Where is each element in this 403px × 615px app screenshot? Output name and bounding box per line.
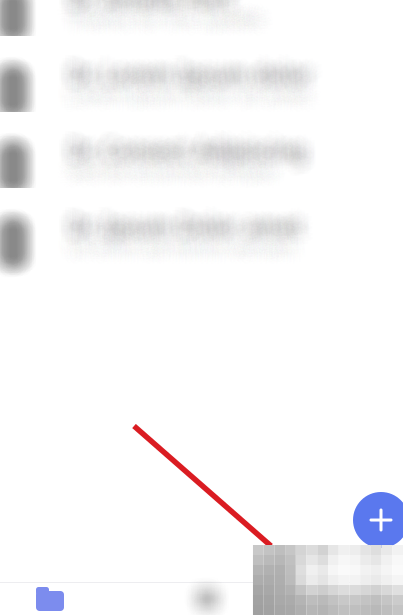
staticText: Dr. Amelia Hart (70, 0, 235, 2)
staticText: Dr. Lorem Ipsum dolor (75, 56, 319, 86)
button[interactable]: Dr. Consect Adipiscing (0, 112, 403, 188)
button[interactable]: Files (0, 583, 100, 615)
staticText: Dr. Amelia Hart (73, 0, 238, 17)
staticText: Dr. Lorem Ipsum dolor (63, 56, 307, 86)
staticText: Dr. Amelia Hart (63, 0, 228, 5)
staticText: Ut enim ad minim veniam (77, 239, 304, 264)
staticText: Lorem ipsum dolor sit amet (67, 82, 309, 107)
staticText: Lorem ipsum dolor sit amet (62, 88, 304, 112)
staticText: Lorem ipsum dolor sit amet (73, 85, 315, 110)
staticText: Dr. Consect Adipiscing (59, 139, 297, 170)
staticText: Dr. Consect Adipiscing (67, 136, 305, 166)
staticText: Dr. Ipsum Dolor amet (62, 218, 296, 248)
staticText: Lorem ipsum dolor sit amet (75, 75, 317, 100)
staticText: Dr. Ipsum Dolor amet (69, 216, 303, 246)
staticText: Sed do eiusmod tempor (66, 153, 276, 178)
staticText: Lorem ipsum dolor sit amet (78, 75, 320, 100)
staticText: Lorem ipsum dolor sit amet (65, 73, 307, 98)
button[interactable]: Chats (157, 583, 257, 615)
button[interactable]: New conversation (353, 492, 403, 548)
staticText: Ut enim ad minim veniam (75, 227, 302, 252)
staticText: Thanks for the update (73, 9, 268, 34)
staticText: Dr. Lorem Ipsum dolor (64, 54, 308, 84)
staticText: Dr. Amelia Hart (59, 0, 224, 18)
staticText: Dr. Ipsum Dolor amet (57, 212, 291, 242)
button[interactable]: Dr. Amelia Hart (0, 0, 403, 36)
staticText: Dr. Ipsum Dolor amet (73, 215, 307, 245)
staticText: Dr. Amelia Hart (71, 0, 236, 11)
staticText: Thanks for the update (75, 0, 270, 21)
staticText: Dr. Lorem Ipsum dolor (69, 59, 313, 89)
staticText: Dr. Amelia Hart (75, 0, 240, 17)
staticText: Sed do eiusmod tempor (70, 153, 280, 177)
staticText: Ut enim ad minim veniam (63, 225, 290, 250)
staticText: Dr. Amelia Hart (67, 0, 232, 7)
staticText: Dr. Ipsum Dolor amet (65, 203, 299, 234)
staticText: Thanks for the update (62, 5, 257, 30)
staticText: Dr. Lorem Ipsum dolor (72, 68, 316, 98)
staticText: Dr. Amelia Hart (77, 0, 242, 19)
staticText: Dr. Amelia Hart (64, 0, 229, 24)
staticText: Dr. Lorem Ipsum dolor (65, 66, 309, 96)
staticText: Thanks for the update (64, 7, 259, 32)
staticText: Lorem ipsum dolor sit amet (70, 77, 312, 101)
staticText: Lorem ipsum dolor sit amet (67, 85, 309, 109)
staticText: Sed do eiusmod tempor (70, 150, 280, 175)
staticText: Thanks for the update (71, 0, 266, 20)
staticText: Dr. Amelia Hart (57, 0, 222, 14)
staticText: Sed do eiusmod tempor (71, 155, 281, 180)
staticText: Dr. Lorem Ipsum dolor (69, 67, 313, 97)
staticText: Sed do eiusmod tempor (65, 156, 275, 181)
button[interactable]: Shared (257, 583, 357, 615)
staticText: Dr. Consect Adipiscing (79, 136, 317, 166)
staticText: Thanks for the update (63, 0, 258, 19)
button[interactable]: Dr. Lorem Ipsum dolor (0, 36, 403, 112)
staticText: Dr. Consect Adipiscing (77, 141, 315, 171)
staticText: Lorem ipsum dolor sit amet (71, 79, 313, 104)
staticText: Dr. Lorem Ipsum dolor (59, 63, 303, 94)
staticText: Dr. Lorem Ipsum dolor (70, 55, 314, 85)
staticText: Ut enim ad minim veniam (67, 227, 294, 252)
staticText: Thanks for the update (66, 0, 261, 19)
button[interactable]: Dr. Ipsum Dolor amet (0, 188, 403, 264)
staticText: Dr. Consect Adipiscing (59, 134, 297, 164)
